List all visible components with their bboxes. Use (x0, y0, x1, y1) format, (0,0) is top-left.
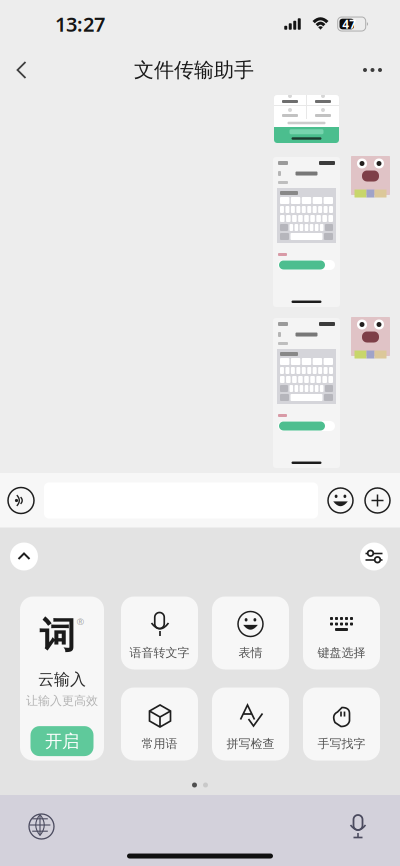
button[interactable]: 拼写检查 (212, 687, 289, 760)
staticText: 键盘选择 (317, 645, 365, 660)
staticText: 语音转文字 (129, 645, 189, 660)
staticText: 13:27 (55, 11, 105, 37)
button[interactable]: 表情 (212, 596, 289, 669)
staticText: 文件传输助手 (134, 58, 254, 82)
button[interactable]: Dictation (335, 807, 400, 845)
button[interactable]: 键盘选择 (303, 596, 380, 669)
button[interactable]: Switch keyboard (0, 808, 66, 845)
button[interactable]: Back (0, 48, 43, 92)
button[interactable]: Voice message (0, 473, 44, 528)
staticText: 让输入更高效 (26, 693, 98, 708)
button[interactable]: Add attachment (365, 473, 400, 528)
staticText: 47 (342, 16, 356, 32)
button[interactable]: 语音转文字 (121, 596, 198, 669)
staticText: 开启 (45, 730, 79, 752)
staticText: 表情 (238, 645, 262, 660)
button[interactable]: Keyboard settings (360, 542, 388, 570)
button[interactable]: Emoji (318, 473, 365, 528)
staticText: 常用语 (141, 736, 177, 751)
button[interactable]: 手写找字 (303, 687, 380, 760)
staticText: 手写找字 (317, 736, 365, 751)
staticText: 拼写检查 (226, 736, 274, 751)
button[interactable]: 词 (20, 596, 104, 760)
button[interactable]: More options (345, 48, 400, 92)
staticText: 词 (39, 613, 75, 658)
button[interactable]: 常用语 (121, 687, 198, 760)
button[interactable]: Collapse panel (10, 542, 38, 570)
staticText: 云输入 (38, 670, 86, 689)
staticText: ® (76, 615, 84, 628)
